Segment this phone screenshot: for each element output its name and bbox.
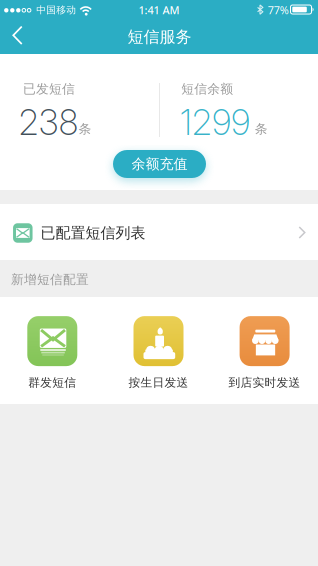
button[interactable]: Back xyxy=(1,19,37,52)
staticText: 余额充值 xyxy=(131,155,187,173)
staticText: 77% xyxy=(268,3,289,17)
staticText: 群发短信 xyxy=(28,375,76,390)
staticText: 短信服务 xyxy=(127,27,191,47)
staticText: 1299 xyxy=(180,101,250,143)
button[interactable]: 余额充值 xyxy=(113,150,206,178)
staticText: 短信余额 xyxy=(181,81,233,97)
button[interactable]: 到店实时发送 xyxy=(229,316,301,390)
staticText: 已配置短信列表 xyxy=(40,224,145,242)
staticText: 到店实时发送 xyxy=(229,375,301,390)
staticText: 238 xyxy=(19,101,78,143)
button[interactable]: 已配置短信列表 xyxy=(0,204,318,260)
staticText: 中国移动 xyxy=(36,4,76,16)
button[interactable]: 按生日发送 xyxy=(128,316,188,390)
button[interactable]: 群发短信 xyxy=(27,316,77,390)
staticText: 条 xyxy=(255,121,268,137)
staticText: 已发短信 xyxy=(23,81,75,97)
staticText: 1:41 AM xyxy=(138,3,179,17)
staticText: 新增短信配置 xyxy=(11,271,89,287)
staticText: 按生日发送 xyxy=(128,375,188,390)
staticText: 条 xyxy=(78,121,91,137)
